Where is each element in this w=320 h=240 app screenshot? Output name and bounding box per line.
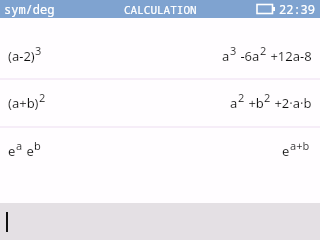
staticText: (a+b) — [8, 94, 39, 112]
button[interactable] — [0, 203, 320, 240]
staticText: 2 — [238, 90, 245, 105]
staticText: a — [230, 94, 238, 112]
staticText: 22:39 — [279, 1, 316, 17]
staticText: e — [8, 142, 16, 160]
staticText: -6a — [237, 47, 260, 65]
staticText: 3 — [35, 43, 42, 58]
staticText: e — [23, 142, 34, 160]
staticText: a — [222, 47, 230, 65]
staticText: +12a-8 — [267, 47, 312, 65]
staticText: (a-2) — [8, 47, 35, 65]
staticText: +b — [245, 94, 264, 112]
staticText: e — [282, 142, 290, 160]
staticText: +2·a·b — [271, 94, 312, 112]
staticText: 3 — [230, 43, 237, 58]
staticText: CALCULATION — [124, 2, 197, 17]
staticText: 2 — [39, 90, 46, 105]
staticText: 2 — [260, 43, 267, 58]
button[interactable]: sym/deg — [4, 1, 55, 17]
staticText: b — [34, 138, 41, 153]
button[interactable]: (a+b) — [0, 80, 320, 126]
other: Battery — [257, 4, 275, 14]
button[interactable]: (a-2) — [0, 34, 320, 78]
button[interactable]: e — [0, 128, 320, 174]
staticText: a — [16, 138, 23, 153]
staticText: 2 — [264, 90, 271, 105]
staticText: a+b — [290, 138, 310, 153]
